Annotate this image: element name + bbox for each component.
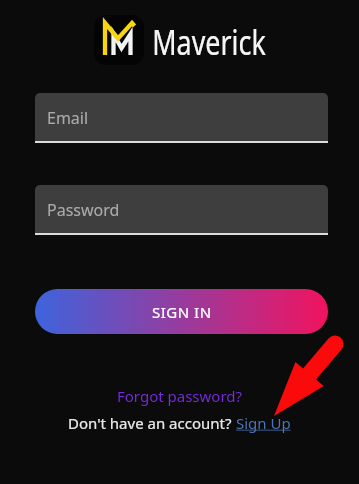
staticText: Password	[47, 199, 120, 221]
staticText: Don't have an account?	[68, 413, 236, 433]
staticText: SIGN IN	[152, 302, 212, 322]
button[interactable]: Forgot password?	[117, 386, 243, 406]
button[interactable]: Password	[35, 185, 328, 235]
button[interactable]: Email	[35, 93, 328, 143]
staticText: Forgot password?	[117, 386, 243, 406]
staticText: Email	[47, 107, 89, 129]
button[interactable]: SIGN IN	[35, 289, 328, 334]
button[interactable]: Sign Up	[236, 413, 291, 433]
staticText: Sign Up	[236, 413, 291, 433]
staticText: Maverick	[142, 19, 276, 65]
